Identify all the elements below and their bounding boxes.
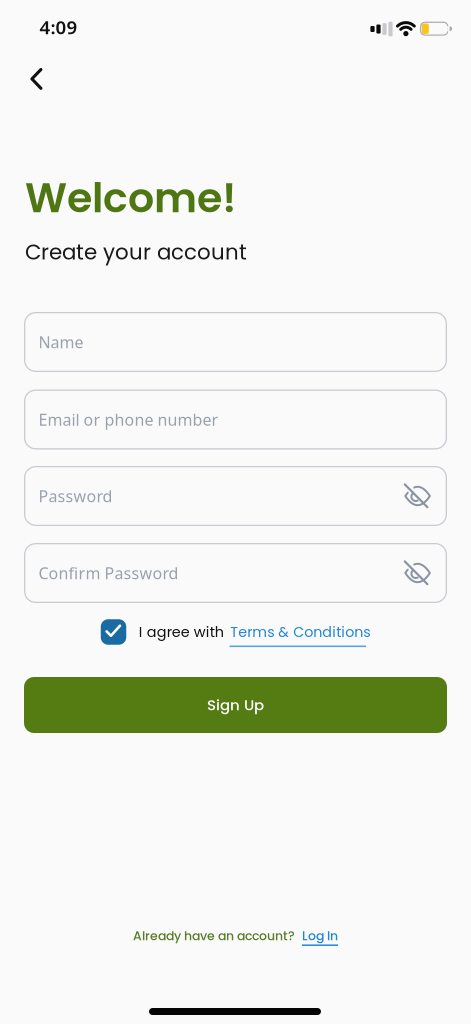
staticText: Already have an account?	[133, 927, 295, 945]
button[interactable]: Sign Up	[24, 677, 447, 733]
staticText: Password	[38, 485, 112, 507]
staticText: Sign Up	[207, 694, 264, 715]
staticText: Terms & Conditions	[230, 622, 370, 642]
staticText: Email or phone number	[38, 409, 218, 430]
button[interactable]: Email or phone number	[24, 389, 447, 449]
staticText: Welcome!	[25, 169, 237, 227]
button[interactable]: Terms & Conditions	[230, 622, 370, 642]
staticText: Create your account	[25, 237, 247, 267]
button[interactable]: Show password	[404, 560, 431, 586]
button[interactable]: Password	[24, 466, 447, 526]
staticText: Log In	[302, 927, 338, 945]
staticText: I agree with	[139, 622, 224, 642]
staticText: Confirm Password	[38, 562, 178, 584]
button[interactable]: Confirm Password	[24, 543, 447, 603]
button[interactable]: Show password	[404, 483, 431, 509]
button[interactable]: Name	[24, 312, 447, 372]
button[interactable]: I agree with Terms & Conditions	[101, 619, 126, 645]
staticText: Name	[38, 331, 83, 353]
button[interactable]: Log In	[302, 927, 338, 945]
button[interactable]: Back	[30, 68, 42, 90]
staticText: 4:09	[39, 14, 77, 39]
